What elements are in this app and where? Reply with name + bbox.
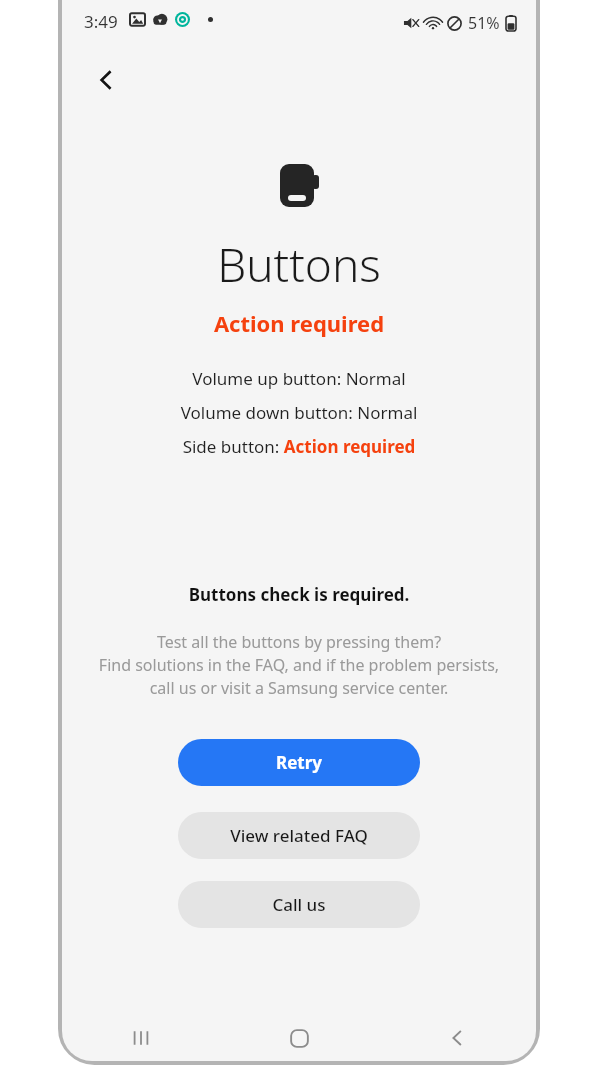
button[interactable]: View related FAQ <box>178 812 420 859</box>
staticText: Action required <box>62 308 536 338</box>
staticText: View related FAQ <box>230 824 368 847</box>
button[interactable]: Back <box>82 56 130 104</box>
staticText: Buttons check is required. <box>62 583 536 606</box>
staticText: Retry <box>276 751 322 774</box>
staticText: 51% <box>468 12 500 34</box>
button[interactable]: Home <box>220 1015 378 1061</box>
staticText: Volume down button: Normal <box>62 401 536 424</box>
staticText: Buttons <box>62 233 536 296</box>
staticText: Test all the buttons by pressing them? F… <box>76 631 522 699</box>
button[interactable]: Call us <box>178 881 420 928</box>
button[interactable]: Back <box>378 1015 536 1061</box>
staticText: 3:49 <box>84 10 118 33</box>
staticText: Volume up button: Normal <box>62 367 536 390</box>
button[interactable]: Recent apps <box>62 1015 220 1061</box>
staticText: Side button: Action required <box>62 435 536 458</box>
button[interactable]: Retry <box>178 739 420 786</box>
staticText: Call us <box>272 893 326 916</box>
